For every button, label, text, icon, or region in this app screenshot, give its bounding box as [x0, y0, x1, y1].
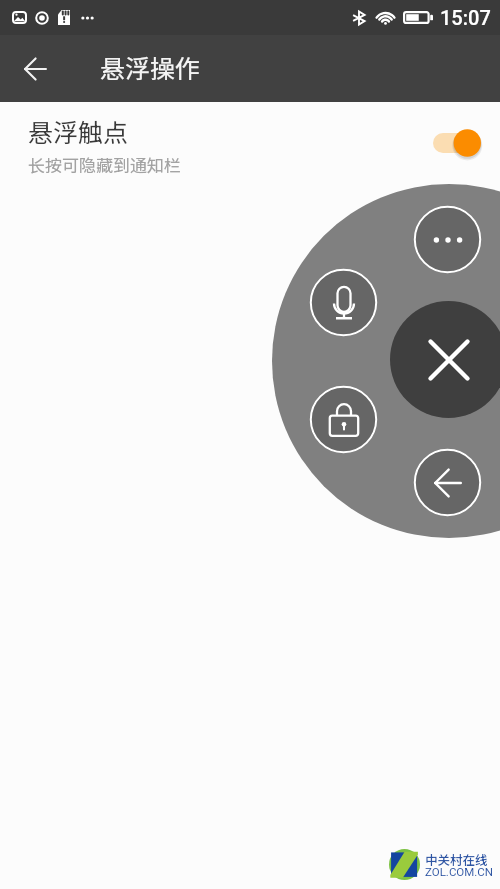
- button[interactable]: Lock screen: [309, 385, 378, 454]
- button[interactable]: Back: [12, 45, 59, 92]
- button[interactable]: 悬浮触点: [0, 102, 500, 177]
- staticText: 悬浮触点: [28, 113, 129, 149]
- staticText: 悬浮操作: [100, 49, 201, 85]
- button[interactable]: Toggle floating touch point: [433, 127, 481, 159]
- staticText: 中关村在线: [425, 850, 488, 868]
- button[interactable]: Close menu: [390, 301, 500, 418]
- button[interactable]: More options: [413, 205, 482, 274]
- button[interactable]: Voice assistant: [309, 268, 378, 337]
- staticText: ZOL.COM.CN: [425, 865, 494, 878]
- button[interactable]: Back: [413, 448, 482, 517]
- staticText: 长按可隐藏到通知栏: [28, 152, 181, 177]
- staticText: 15:07: [440, 6, 491, 29]
